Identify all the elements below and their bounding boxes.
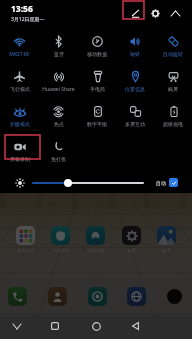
- button[interactable]: Huawei Share: [39, 61, 78, 96]
- button[interactable]: 免打扰: [39, 131, 78, 166]
- button[interactable]: 自动旋转: [154, 26, 192, 61]
- button[interactable]: Edit: [125, 4, 146, 22]
- button[interactable]: MKST-KF: [0, 26, 39, 61]
- button[interactable]: 响铃: [116, 26, 154, 61]
- button[interactable]: Settings: [147, 5, 163, 21]
- button[interactable]: 设置: [122, 226, 141, 254]
- button[interactable]: 护眼模式: [0, 96, 39, 131]
- staticText: 应用市场: [87, 248, 105, 254]
- button[interactable]: 移动数据: [78, 26, 116, 61]
- staticText: 移动数据: [87, 51, 107, 57]
- staticText: 免打扰: [51, 156, 66, 162]
- staticText: 13:56: [11, 3, 33, 15]
- button[interactable]: App: [48, 287, 67, 306]
- button[interactable]: 实用工具: [16, 226, 35, 254]
- button[interactable]: 应用市场: [86, 226, 105, 254]
- staticText: 护眼模式: [10, 121, 30, 127]
- button[interactable]: 超级省电: [154, 96, 192, 131]
- button[interactable]: Recents: [42, 313, 68, 339]
- button[interactable]: 图库: [157, 226, 176, 254]
- button[interactable]: App: [88, 287, 107, 306]
- staticText: 手机管家: [52, 248, 70, 254]
- button[interactable]: Hide: [4, 313, 30, 339]
- staticText: 数字平衡: [87, 121, 107, 127]
- staticText: 实用工具: [17, 248, 35, 254]
- staticText: 屏幕录制: [10, 156, 30, 162]
- staticText: 超级省电: [163, 121, 183, 127]
- staticText: 图库: [162, 248, 171, 254]
- button[interactable]: 数字平衡: [78, 96, 116, 131]
- staticText: 截屏: [168, 86, 178, 92]
- button[interactable]: Back: [122, 313, 148, 339]
- staticText: 自动旋转: [163, 51, 183, 57]
- button[interactable]: 多屏互动: [116, 96, 154, 131]
- button[interactable]: 热点: [39, 96, 78, 131]
- button[interactable]: Assistant: [167, 289, 182, 304]
- button[interactable]: [169, 178, 178, 187]
- staticText: 多屏互动: [125, 121, 145, 127]
- button[interactable]: Home: [83, 313, 109, 339]
- staticText: 热点: [54, 121, 64, 127]
- staticText: 自动: [156, 180, 166, 186]
- staticText: MKST-KF: [9, 51, 30, 58]
- button[interactable]: Collapse: [167, 5, 183, 21]
- button[interactable]: App: [8, 287, 27, 306]
- staticText: 位置信息: [125, 86, 145, 92]
- staticText: 蓝牙: [54, 51, 64, 57]
- staticText: 手电筒: [90, 86, 105, 92]
- staticText: 响铃: [130, 51, 140, 57]
- button[interactable]: 飞行模式: [0, 61, 39, 96]
- button[interactable]: 蓝牙: [39, 26, 78, 61]
- staticText: 飞行模式: [10, 86, 30, 92]
- staticText: Huawei Share: [42, 86, 75, 93]
- button[interactable]: 手机管家: [51, 226, 70, 254]
- button[interactable]: 位置信息: [116, 61, 154, 96]
- staticText: 设置: [127, 248, 136, 254]
- button[interactable]: 手电筒: [78, 61, 116, 96]
- staticText: 3月12日星期一: [11, 16, 45, 23]
- button[interactable]: 屏幕录制: [0, 131, 39, 166]
- button[interactable]: 截屏: [154, 61, 192, 96]
- button[interactable]: App: [127, 287, 146, 306]
